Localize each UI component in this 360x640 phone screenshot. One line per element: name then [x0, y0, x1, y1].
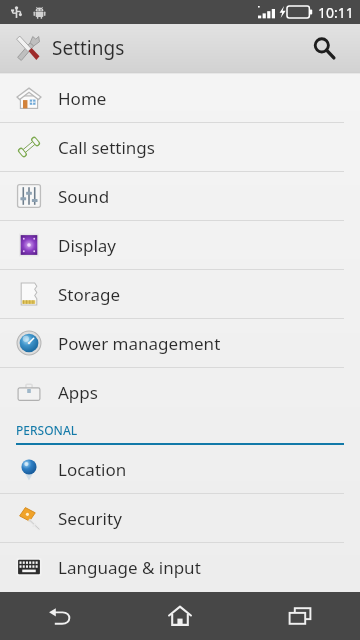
- button[interactable]: Home: [0, 74, 360, 122]
- button[interactable]: Sound: [0, 172, 360, 220]
- button[interactable]: Home: [120, 592, 240, 640]
- staticText: Call settings: [58, 136, 155, 159]
- staticText: PERSONAL: [16, 422, 78, 438]
- staticText: Apps: [58, 381, 98, 404]
- staticText: Storage: [58, 283, 121, 306]
- staticText: Sound: [58, 185, 110, 208]
- button[interactable]: Recents: [240, 592, 360, 640]
- staticText: Security: [58, 507, 122, 530]
- staticText: Display: [58, 234, 116, 257]
- button[interactable]: Security: [0, 494, 360, 542]
- button[interactable]: Back: [0, 592, 120, 640]
- button[interactable]: Search: [302, 26, 346, 70]
- staticText: Home: [58, 87, 107, 110]
- staticText: Settings: [52, 35, 125, 61]
- button[interactable]: Display: [0, 221, 360, 269]
- button[interactable]: Apps: [0, 368, 360, 416]
- staticText: Power management: [58, 332, 221, 355]
- button[interactable]: Call settings: [0, 123, 360, 171]
- button[interactable]: Power management: [0, 319, 360, 367]
- staticText: Location: [58, 458, 127, 481]
- button[interactable]: Location: [0, 445, 360, 493]
- button[interactable]: Storage: [0, 270, 360, 318]
- button[interactable]: Language & input: [0, 543, 360, 591]
- staticText: Language & input: [58, 556, 201, 579]
- staticText: 10:11: [318, 3, 354, 22]
